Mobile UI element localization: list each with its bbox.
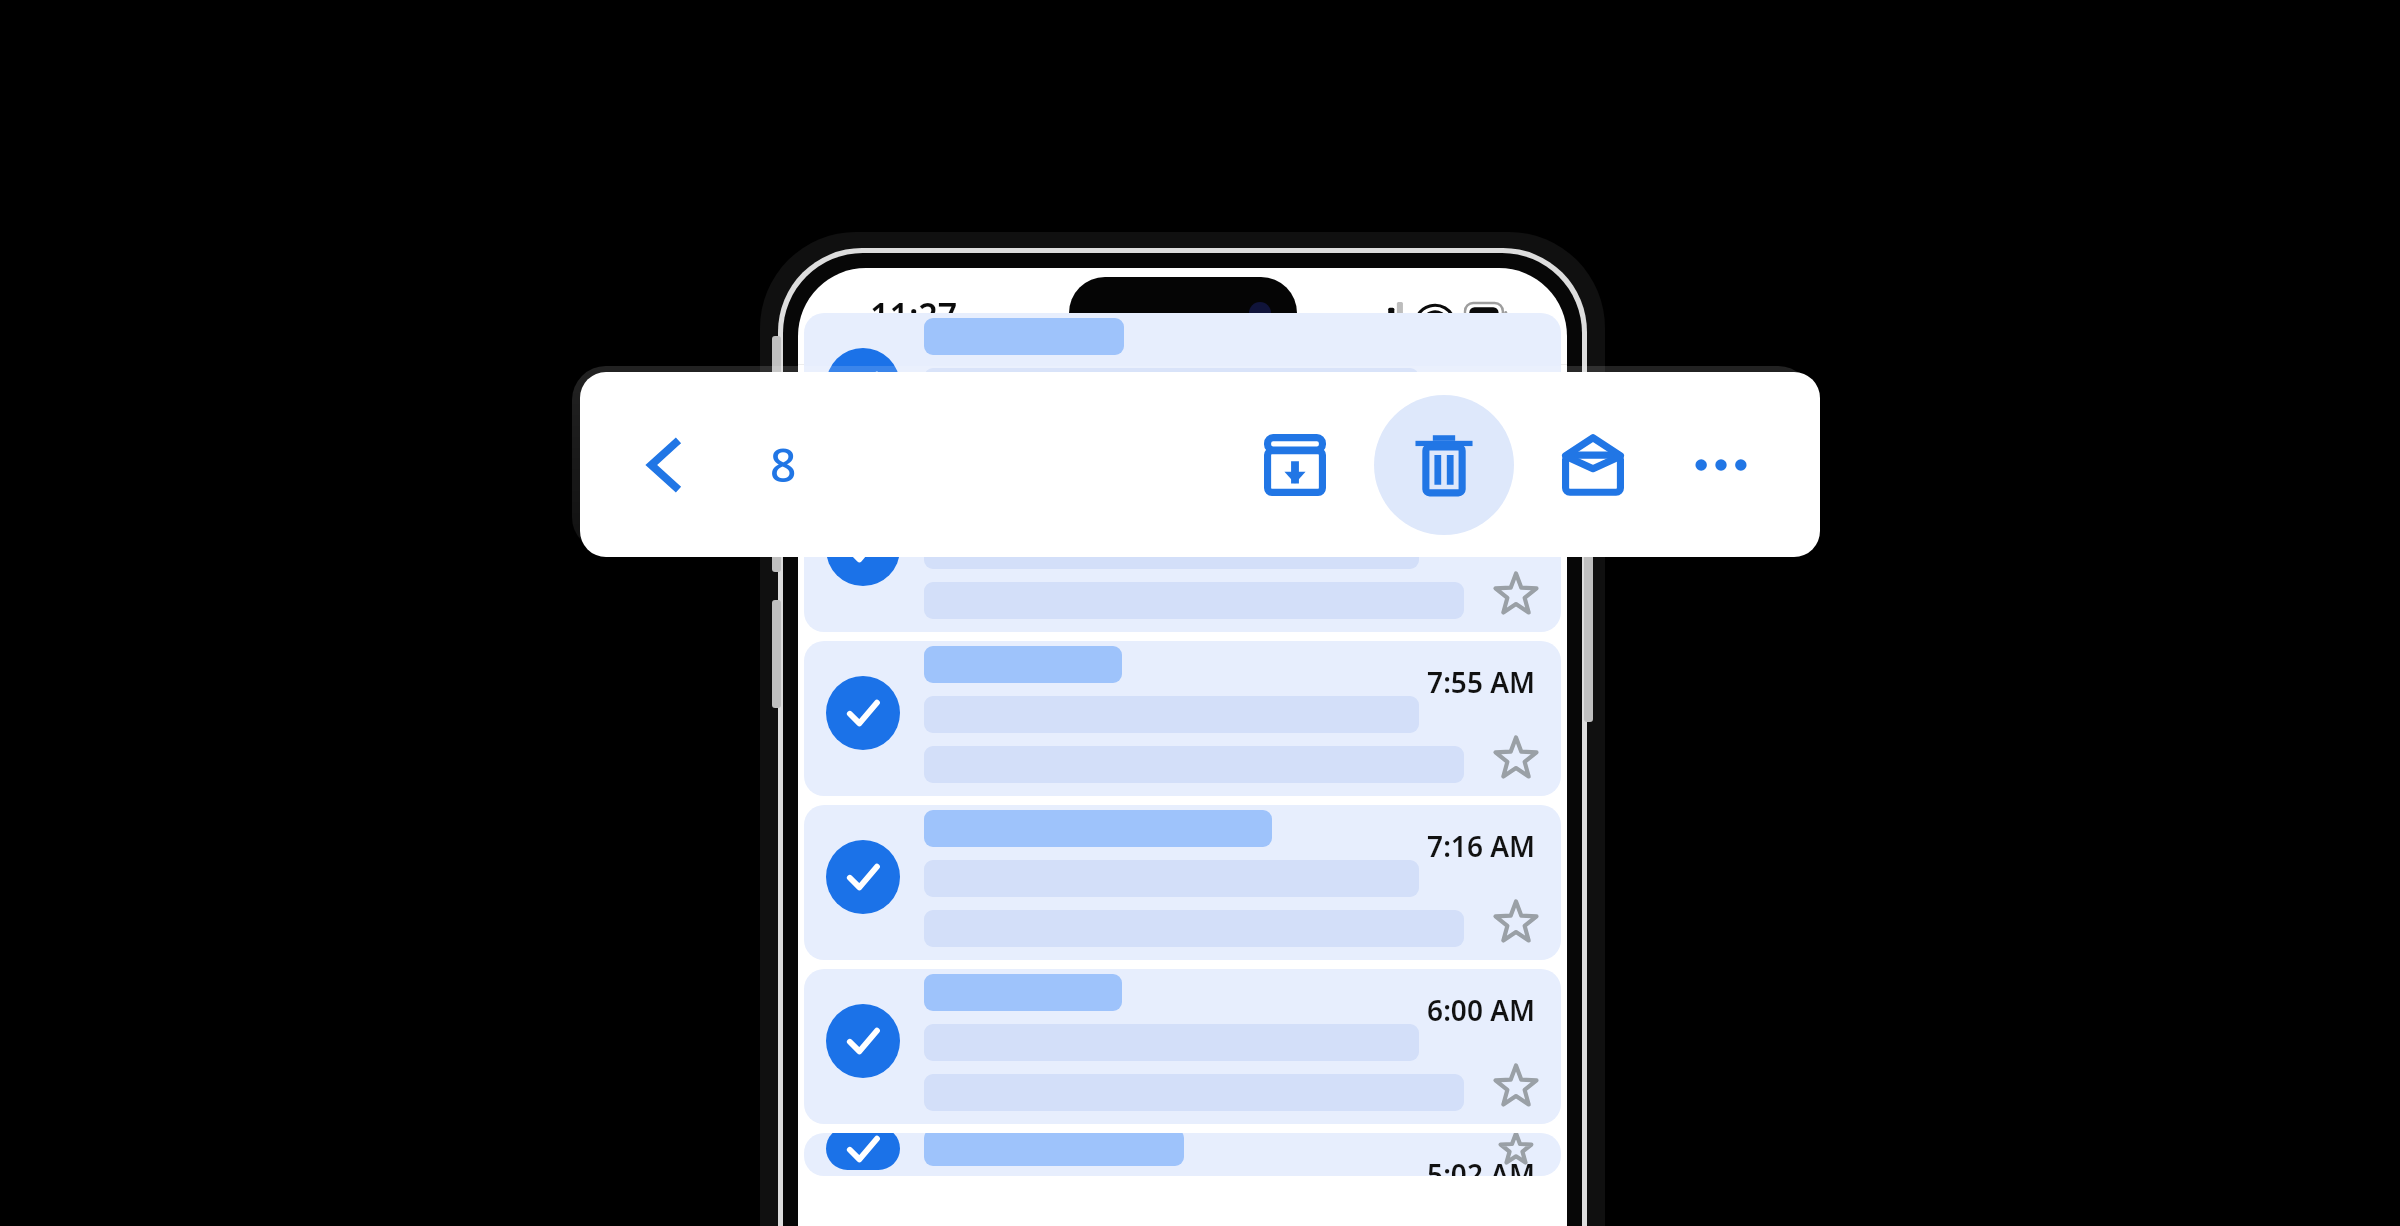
button[interactable]: Selected [804, 805, 1561, 960]
button[interactable]: Selected [826, 348, 900, 422]
button[interactable]: Selected [804, 1133, 1561, 1176]
button[interactable]: Archive [1242, 412, 1348, 518]
button[interactable]: Selected [826, 676, 900, 750]
staticText: 6:00 AM [1427, 991, 1535, 1029]
staticText: 8 [770, 433, 797, 496]
button[interactable]: Star [1489, 896, 1543, 950]
button[interactable]: Selected [804, 641, 1561, 796]
staticText: 7:55 AM [1427, 663, 1535, 701]
button[interactable]: Star [1489, 1133, 1543, 1166]
button[interactable]: Selected [826, 1133, 900, 1170]
button[interactable]: Star [1489, 568, 1543, 622]
button[interactable]: More options [1668, 412, 1774, 518]
button[interactable]: Mark as read [1540, 412, 1646, 518]
button[interactable]: Star [1489, 1060, 1543, 1114]
button[interactable]: Delete [1374, 395, 1514, 535]
staticText: 7:16 AM [1427, 827, 1535, 865]
button[interactable]: Selected [804, 969, 1561, 1124]
button[interactable]: Back [616, 417, 712, 513]
button[interactable]: Selected [804, 313, 1561, 468]
staticText: 9:18 AM [1427, 499, 1535, 537]
button[interactable]: Selected [826, 512, 900, 586]
button[interactable]: Star [1489, 404, 1543, 458]
button[interactable]: Selected [826, 840, 900, 914]
button[interactable]: Star [1489, 732, 1543, 786]
button[interactable]: Selected [804, 477, 1561, 632]
button[interactable]: Selected [826, 1004, 900, 1078]
staticText: 11:27 [870, 292, 958, 338]
staticText: 5:02 AM [1427, 1155, 1535, 1176]
